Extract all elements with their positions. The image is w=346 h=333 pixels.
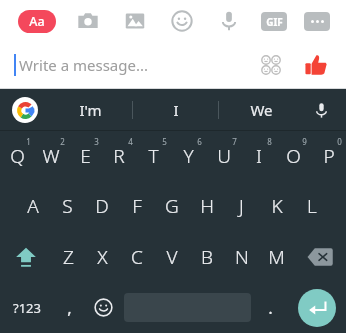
button[interactable]: .: [254, 282, 287, 333]
staticText: R: [113, 143, 125, 169]
staticText: 9: [302, 136, 307, 147]
button[interactable]: ,: [53, 282, 86, 333]
button[interactable]: Enter: [298, 289, 336, 327]
button[interactable]: H: [189, 181, 224, 231]
staticText: G: [165, 193, 179, 219]
button[interactable]: G: [154, 181, 189, 231]
button[interactable]: We: [219, 89, 304, 131]
button[interactable]: I'm: [48, 89, 132, 131]
staticText: ,: [67, 296, 72, 319]
button[interactable]: B: [189, 231, 224, 282]
staticText: 5: [162, 136, 167, 147]
staticText: 8: [267, 136, 272, 147]
button[interactable]: T: [136, 131, 171, 181]
button[interactable]: Write a message...: [19, 42, 254, 88]
staticText: C: [131, 244, 143, 270]
button[interactable]: Emoji: [167, 6, 197, 36]
button[interactable]: P: [311, 131, 346, 181]
button[interactable]: Text formatting: [18, 10, 56, 33]
button[interactable]: Send like: [298, 47, 334, 83]
staticText: A: [27, 193, 39, 219]
staticText: H: [200, 193, 214, 219]
button[interactable]: Camera: [73, 6, 103, 36]
staticText: Aa: [29, 13, 45, 30]
button[interactable]: E: [68, 131, 102, 181]
staticText: S: [62, 193, 73, 219]
button[interactable]: L: [294, 181, 329, 231]
staticText: 7: [232, 136, 237, 147]
button[interactable]: R: [102, 131, 136, 181]
button[interactable]: S: [50, 181, 84, 231]
staticText: L: [307, 193, 317, 219]
button[interactable]: More options: [304, 12, 330, 31]
staticText: N: [235, 244, 249, 270]
staticText: We: [250, 100, 273, 120]
staticText: I'm: [79, 100, 102, 120]
staticText: B: [201, 244, 213, 270]
button[interactable]: J: [224, 181, 259, 231]
staticText: E: [80, 143, 91, 169]
button[interactable]: D: [84, 181, 119, 231]
staticText: O: [286, 143, 301, 169]
button[interactable]: Google: [12, 97, 38, 123]
button[interactable]: W: [34, 131, 68, 181]
button[interactable]: Emoji: [86, 282, 121, 333]
staticText: V: [166, 244, 178, 270]
button[interactable]: V: [154, 231, 189, 282]
button[interactable]: N: [224, 231, 259, 282]
staticText: X: [97, 244, 108, 270]
staticText: K: [271, 193, 283, 219]
staticText: W: [42, 143, 60, 169]
staticText: Y: [183, 143, 194, 169]
staticText: I: [173, 100, 179, 120]
staticText: Q: [10, 143, 25, 169]
button[interactable]: Y: [171, 131, 206, 181]
button[interactable]: Voice input: [304, 93, 338, 127]
staticText: T: [148, 143, 159, 169]
button[interactable]: Z: [51, 231, 85, 282]
button[interactable]: Q: [0, 131, 34, 181]
button[interactable]: Shift: [0, 231, 51, 282]
button[interactable]: K: [259, 181, 294, 231]
button[interactable]: F: [119, 181, 154, 231]
staticText: I: [256, 143, 262, 169]
staticText: J: [239, 193, 244, 219]
button[interactable]: U: [206, 131, 241, 181]
button[interactable]: O: [276, 131, 311, 181]
staticText: Z: [63, 244, 74, 270]
staticText: P: [323, 143, 335, 169]
staticText: .: [268, 296, 273, 319]
staticText: 3: [94, 136, 99, 147]
button[interactable]: X: [85, 231, 119, 282]
staticText: 1: [26, 136, 31, 147]
staticText: ?123: [13, 299, 41, 317]
button[interactable]: I: [133, 89, 218, 131]
staticText: U: [217, 143, 231, 169]
button[interactable]: A: [16, 181, 50, 231]
button[interactable]: Gallery: [120, 6, 150, 36]
button[interactable]: Voice message: [214, 6, 244, 36]
button[interactable]: Stickers: [254, 48, 288, 82]
button[interactable]: GIF: [261, 12, 287, 31]
staticText: GIF: [266, 15, 283, 29]
staticText: Write a message...: [19, 55, 148, 75]
button[interactable]: C: [119, 231, 154, 282]
staticText: 2: [60, 136, 65, 147]
staticText: 4: [128, 136, 133, 147]
staticText: F: [132, 193, 142, 219]
staticText: D: [95, 193, 109, 219]
button[interactable]: M: [259, 231, 294, 282]
staticText: M: [268, 244, 285, 270]
button[interactable]: ?123: [0, 282, 53, 333]
staticText: 6: [197, 136, 202, 147]
button[interactable]: Backspace: [294, 231, 346, 282]
staticText: 0: [337, 136, 342, 147]
button[interactable]: I: [241, 131, 276, 181]
